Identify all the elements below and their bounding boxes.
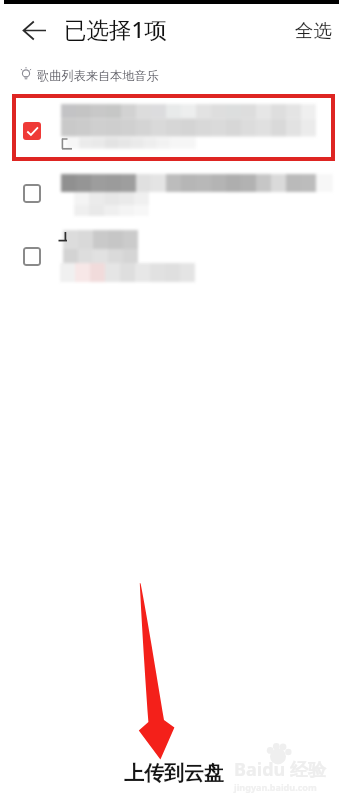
button[interactable]: Selected item 1	[23, 122, 41, 140]
button[interactable]: Back	[23, 21, 46, 40]
staticText: jingyan.baidu.com	[234, 781, 317, 793]
staticText: 上传到云盘	[124, 761, 224, 786]
staticText: 已选择1项	[64, 14, 167, 45]
staticText: 歌曲列表来自本地音乐	[37, 68, 159, 83]
staticText: 全选	[295, 19, 332, 42]
button[interactable]: Select item 2	[23, 184, 41, 203]
button[interactable]: Select item 3	[23, 247, 41, 266]
button[interactable]: 全选	[288, 13, 339, 48]
staticText: Baidu 经验	[234, 757, 326, 782]
